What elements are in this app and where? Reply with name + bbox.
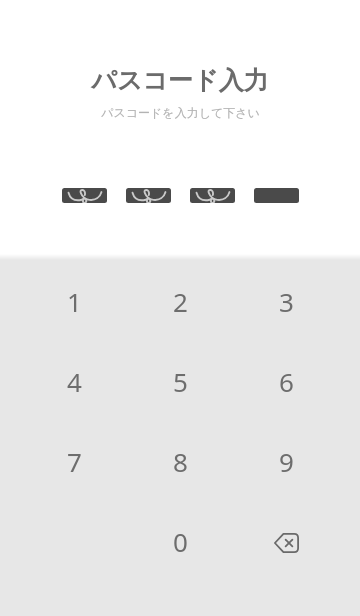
- button[interactable]: 5: [127, 341, 233, 421]
- staticText: パスコード入力: [91, 65, 269, 96]
- staticText: 5: [173, 364, 188, 399]
- staticText: 4: [67, 364, 82, 399]
- staticText: 2: [173, 284, 188, 319]
- staticText: 9: [279, 444, 294, 479]
- button[interactable]: 8: [127, 421, 233, 501]
- button[interactable]: 7: [21, 421, 127, 501]
- button[interactable]: 2: [127, 261, 233, 341]
- button[interactable]: 9: [233, 421, 339, 501]
- staticText: 3: [279, 284, 294, 319]
- staticText: 8: [173, 444, 188, 479]
- button[interactable]: 0: [127, 501, 233, 581]
- staticText: 7: [67, 444, 82, 479]
- button[interactable]: 6: [233, 341, 339, 421]
- button[interactable]: Backspace: [233, 501, 339, 581]
- button[interactable]: 4: [21, 341, 127, 421]
- staticText: 6: [279, 364, 294, 399]
- other: Backspace: [274, 533, 299, 553]
- staticText: 1: [67, 284, 82, 319]
- button[interactable]: 3: [233, 261, 339, 341]
- staticText: 0: [173, 524, 188, 559]
- staticText: パスコードを入力して下さい: [101, 105, 260, 120]
- button[interactable]: 1: [21, 261, 127, 341]
